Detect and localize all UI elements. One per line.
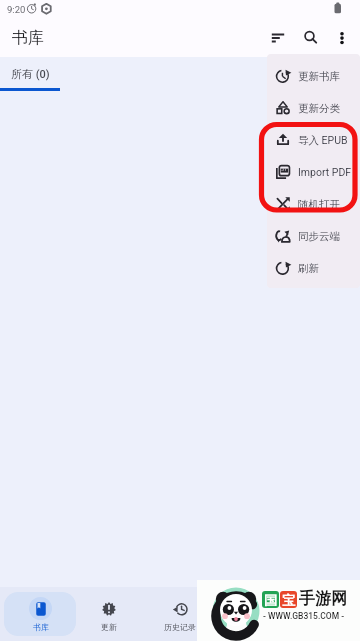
button[interactable]: 更新书库 — [267, 60, 360, 92]
staticText: 所有 (0) — [11, 67, 50, 81]
staticText: 更新分类 — [298, 102, 340, 115]
staticText: 更新书库 — [298, 70, 340, 83]
button[interactable]: Sort — [262, 22, 293, 53]
button[interactable]: 书库 — [4, 587, 76, 641]
staticText: 书库 — [33, 622, 49, 632]
button[interactable]: Search — [295, 22, 326, 53]
button[interactable]: 导入 EPUB — [267, 124, 360, 156]
button[interactable]: More options — [326, 22, 357, 53]
staticText: - WWW.GB315.COM - — [263, 611, 345, 621]
button[interactable]: 更新分类 — [267, 92, 360, 124]
staticText: 书库 — [12, 28, 44, 48]
button[interactable]: 随机打开 — [267, 188, 360, 220]
staticText: 同步云端 — [298, 230, 340, 243]
staticText: 刷新 — [298, 262, 319, 275]
button[interactable]: 刷新 — [267, 252, 360, 284]
staticText: 9:20 — [7, 4, 26, 15]
button[interactable]: 更新 — [76, 587, 140, 641]
staticText: Import PDF — [298, 166, 352, 178]
staticText: 国 — [264, 592, 277, 608]
button[interactable]: 所有 (0) — [0, 57, 60, 91]
staticText: 历史记录 — [164, 622, 196, 632]
button[interactable]: Import PDF — [267, 156, 360, 188]
button[interactable]: 同步云端 — [267, 220, 360, 252]
staticText: 更新 — [101, 622, 117, 632]
staticText: 导入 EPUB — [298, 134, 348, 147]
staticText: 手游网 — [299, 589, 347, 609]
staticText: 随机打开 — [298, 198, 340, 211]
button[interactable]: 历史记录 — [144, 587, 216, 641]
staticText: 宝 — [282, 592, 295, 608]
